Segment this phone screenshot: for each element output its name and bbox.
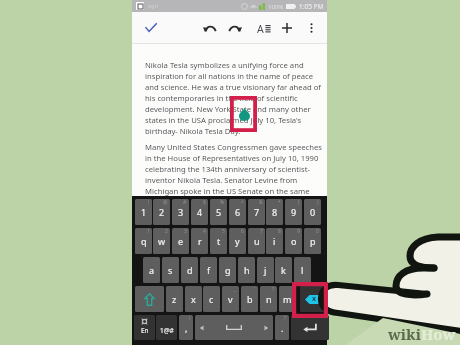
button[interactable]: r (191, 228, 208, 254)
staticText: h (244, 264, 250, 276)
staticText: % (220, 199, 225, 206)
button[interactable]: j (257, 257, 274, 283)
button[interactable]: 8 (266, 199, 283, 225)
button[interactable]: 4 (191, 199, 208, 225)
button[interactable]: t (210, 228, 227, 254)
staticText: 0 (316, 228, 319, 235)
button[interactable]: Redo (229, 24, 242, 32)
button[interactable]: p (304, 228, 321, 254)
staticText: 5 (222, 228, 225, 235)
staticText: How (421, 324, 456, 344)
staticText: ) (317, 199, 319, 206)
staticText: 100% (268, 3, 284, 11)
staticText: 1 (147, 228, 150, 235)
button[interactable]: . (275, 315, 289, 340)
button[interactable]: 5 (210, 199, 227, 225)
staticText: in the House of Representatives on July … (145, 153, 319, 163)
staticText: c (209, 293, 214, 305)
staticText: inspiration for all nations in the name … (145, 71, 314, 81)
staticText: Michigan spoke in the US Senate on the s… (145, 186, 310, 196)
button[interactable]: Text format (257, 22, 271, 34)
staticText: 3 (178, 206, 184, 218)
button[interactable]: m (279, 286, 296, 312)
staticText: 3 (184, 228, 187, 235)
staticText: En (141, 326, 149, 335)
button[interactable]: s (162, 257, 179, 283)
staticText: r (198, 235, 202, 247)
button[interactable]: e (172, 228, 189, 254)
button[interactable]: l (294, 257, 311, 283)
button[interactable]: i (266, 228, 283, 254)
button[interactable]: w (153, 228, 170, 254)
staticText: x (191, 293, 196, 305)
button[interactable]: d (181, 257, 198, 283)
staticText: 0 (310, 206, 316, 218)
staticText: 1:05 PM (299, 2, 324, 11)
button[interactable]: Undo (203, 24, 216, 32)
staticText: q (141, 235, 147, 247)
staticText: Nikola Tesla symbolizes a unifying force… (145, 60, 304, 70)
staticText: 6 (235, 206, 241, 218)
button[interactable]: , (179, 315, 193, 340)
button[interactable]: 9 (285, 199, 302, 225)
button[interactable]: q (135, 228, 152, 254)
staticText: ! (189, 315, 191, 322)
button[interactable]: En (134, 315, 155, 340)
button[interactable]: o (285, 228, 302, 254)
button[interactable]: 6 (229, 199, 246, 225)
staticText: e (178, 235, 184, 247)
button[interactable] (135, 286, 164, 312)
staticText: b (247, 293, 253, 305)
button[interactable]: 7 (248, 199, 265, 225)
button[interactable]: x (185, 286, 202, 312)
button[interactable]: 0 (304, 199, 321, 225)
staticText: 9 (297, 228, 300, 235)
button[interactable]: k (275, 257, 292, 283)
button[interactable]: b (241, 286, 258, 312)
staticText: 5 (216, 206, 222, 218)
staticText: x (312, 294, 317, 304)
staticText: , (185, 322, 188, 334)
staticText: p (310, 235, 316, 247)
staticText: 4 (203, 228, 206, 235)
staticText: Many United States Congressmen gave spee… (145, 142, 323, 152)
staticText: 8 (272, 206, 278, 218)
button[interactable]: z (166, 286, 183, 312)
button[interactable] (291, 315, 329, 340)
staticText: and science. He was a true visionary far… (145, 82, 321, 92)
staticText: j (264, 264, 267, 276)
staticText: . (281, 322, 284, 334)
staticText: f (207, 264, 211, 276)
staticText: n (266, 293, 272, 305)
button[interactable]: u (248, 228, 265, 254)
button[interactable]: c (203, 286, 220, 312)
button[interactable]: 1@# (156, 315, 177, 340)
button[interactable]: 1 (135, 199, 152, 225)
button[interactable]: v (222, 286, 239, 312)
button[interactable]: h (238, 257, 255, 283)
button[interactable]: 3 (172, 199, 189, 225)
staticText: a (149, 264, 155, 276)
button[interactable]: More options (309, 23, 314, 33)
button[interactable]: f (200, 257, 217, 283)
button[interactable]: g (219, 257, 236, 283)
button[interactable]: 2 (153, 199, 170, 225)
button[interactable]: x (300, 286, 325, 312)
button[interactable]: n (260, 286, 277, 312)
staticText: 7 (260, 228, 263, 235)
staticText: ? (272, 286, 275, 293)
staticText: y (235, 235, 240, 247)
button[interactable]: Done (145, 23, 157, 32)
staticText: A (257, 22, 264, 34)
button[interactable]: a (143, 257, 160, 283)
button[interactable] (195, 315, 273, 340)
button[interactable]: Add (282, 23, 292, 33)
staticText: 2 (159, 206, 165, 218)
staticText: 7 (254, 206, 260, 218)
staticText: 2 (165, 228, 168, 235)
staticText: 6 (241, 228, 244, 235)
staticText: @ (163, 199, 168, 206)
staticText: wiki (388, 324, 421, 344)
staticText: & (259, 199, 263, 206)
button[interactable]: y (229, 228, 246, 254)
